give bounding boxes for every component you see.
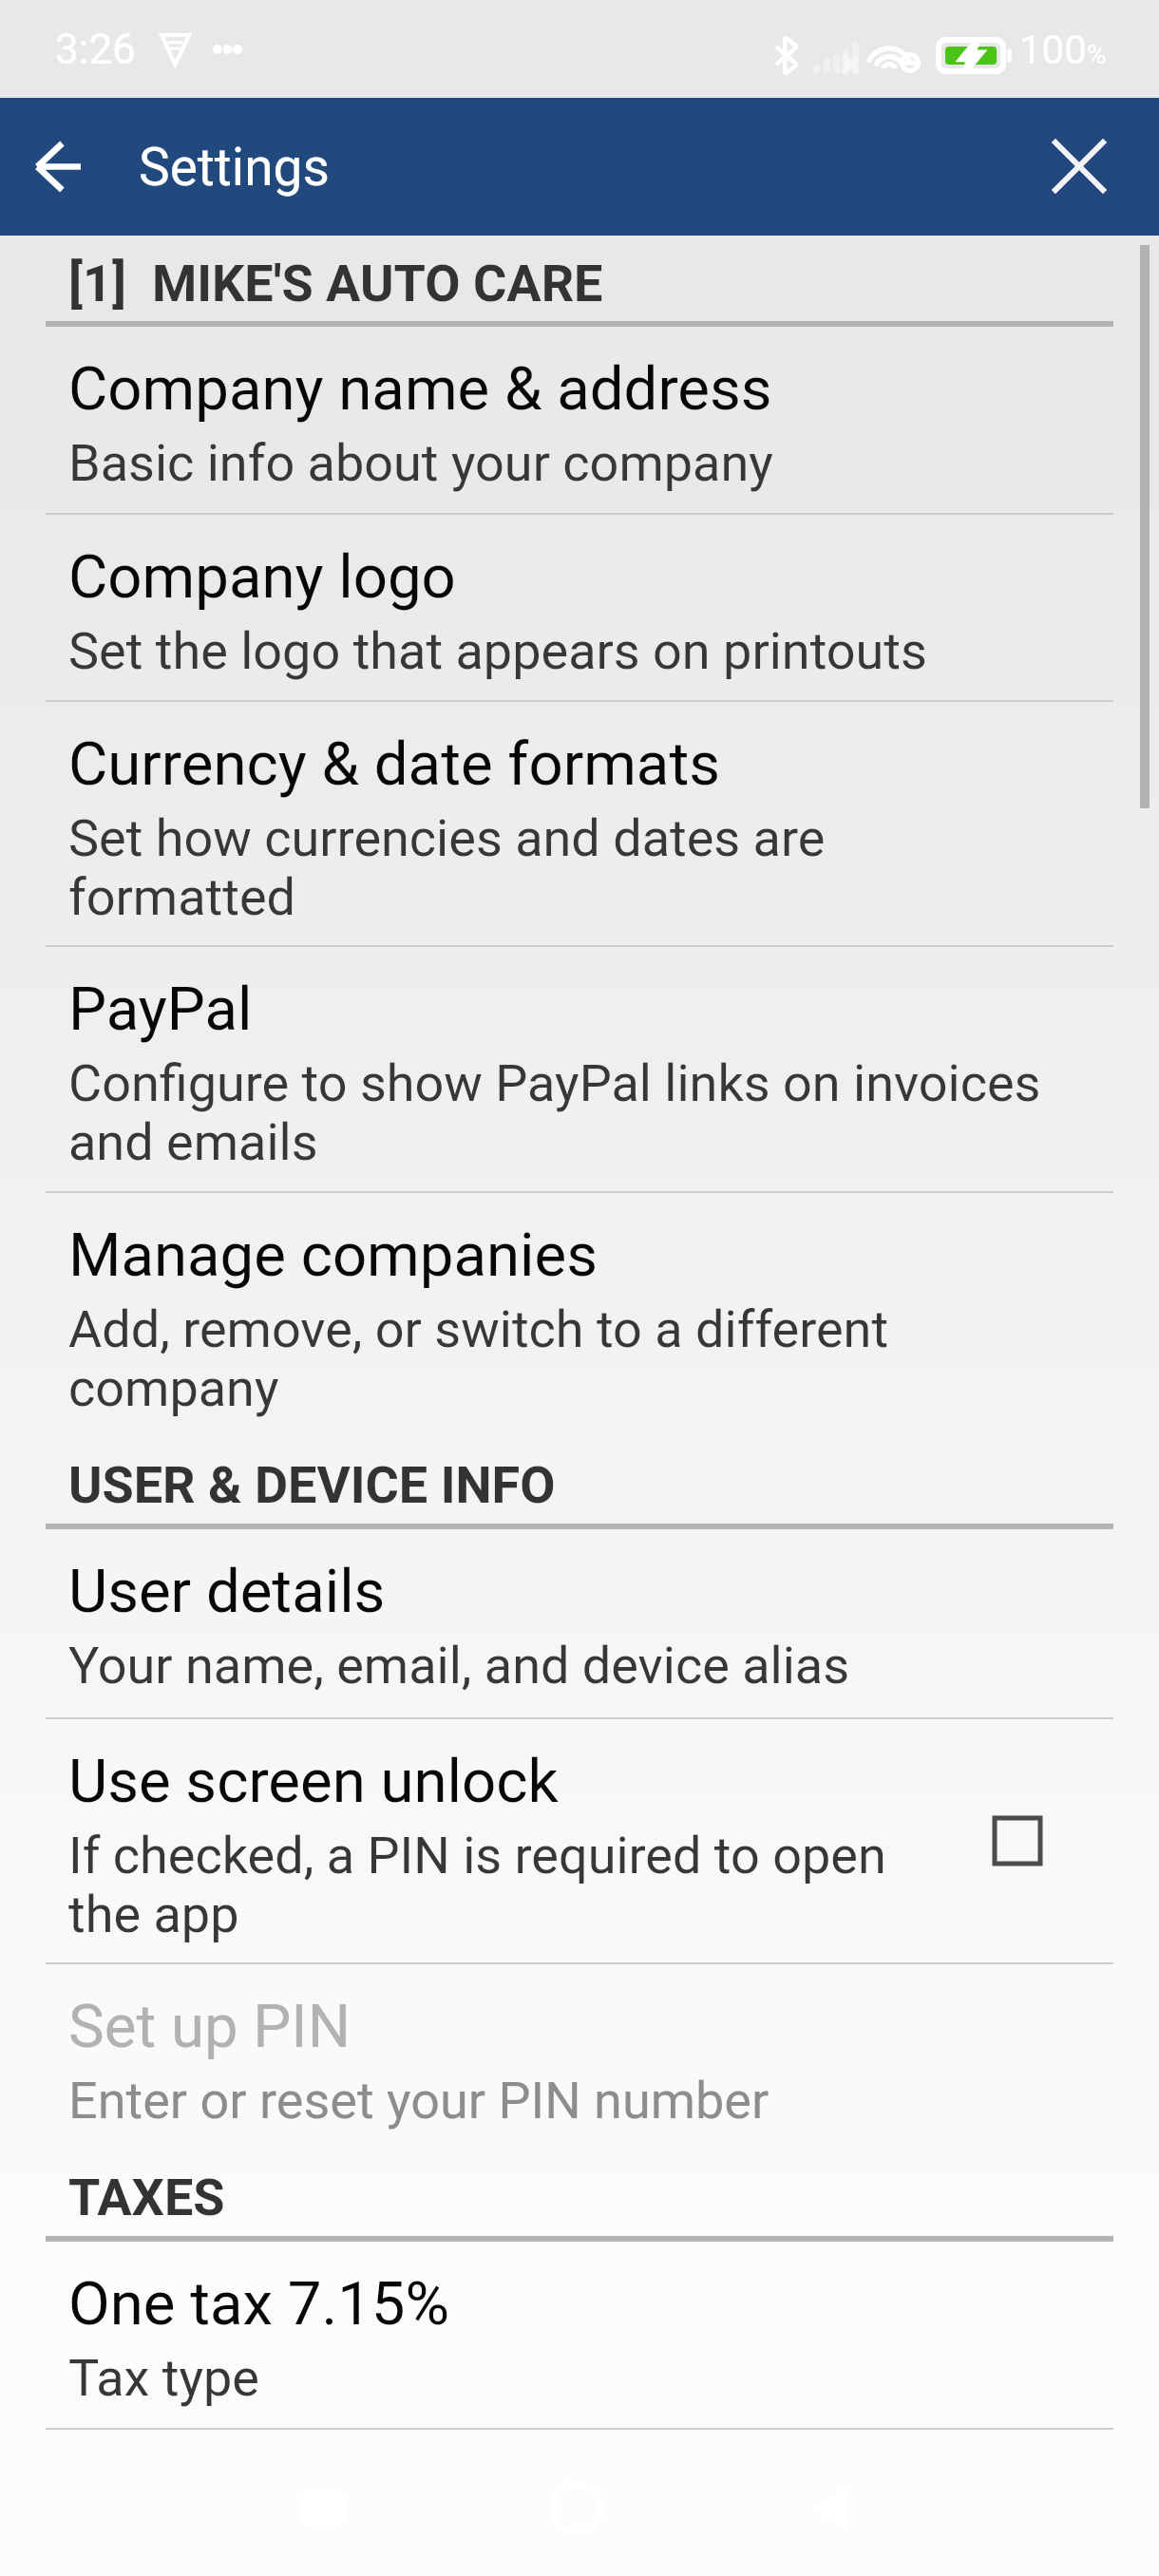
staticText: PayPal [68, 974, 253, 1044]
button[interactable]: Navigate up [6, 115, 108, 218]
staticText: USER & DEVICE INFO [68, 1455, 556, 1515]
button[interactable]: User details [0, 1529, 1159, 1717]
staticText: [1] MIKE'S AUTO CARE [68, 254, 603, 313]
staticText: Set how currencies and dates are formatt… [68, 809, 857, 927]
staticText: Company logo [68, 541, 456, 612]
staticText: User details [68, 1556, 386, 1626]
staticText: Configure to show PayPal links on invoic… [68, 1054, 1052, 1172]
button[interactable]: One tax 7.15% [0, 2242, 1159, 2428]
staticText: % [1087, 39, 1107, 70]
button[interactable]: Use screen unlock checkbox [972, 1795, 1063, 1886]
button[interactable]: Currency & date formats [0, 702, 1159, 945]
button[interactable]: PayPal [0, 947, 1159, 1191]
staticText: 100 [1019, 27, 1087, 73]
staticText: Set the logo that appears on printouts [68, 622, 927, 681]
button[interactable]: Manage companies [0, 1193, 1159, 1431]
staticText: Tax type [68, 2349, 259, 2408]
staticText: 3:26 [55, 25, 136, 74]
staticText: Company name & address [68, 353, 772, 424]
staticText: Settings [139, 137, 330, 198]
staticText: One tax 7.15% [68, 2268, 450, 2339]
button[interactable]: Set up PIN [0, 1964, 1159, 2144]
staticText: Your name, email, and device alias [68, 1637, 850, 1695]
staticText: Currency & date formats [68, 729, 720, 799]
staticText: Manage companies [68, 1220, 598, 1290]
staticText: If checked, a PIN is required to open th… [68, 1827, 895, 1944]
staticText: Enter or reset your PIN number [68, 2072, 769, 2131]
staticText: TAXES [68, 2168, 225, 2227]
button[interactable]: Company logo [0, 515, 1159, 700]
button[interactable]: Close [1028, 115, 1130, 218]
staticText: Basic info about your company [68, 434, 773, 493]
staticText: Use screen unlock [68, 1746, 559, 1816]
button[interactable]: Use screen unlock [0, 1719, 1159, 1962]
staticText: Add, remove, or switch to a different co… [68, 1300, 895, 1418]
staticText: Set up PIN [68, 1991, 351, 2061]
button[interactable]: Company name & address [0, 327, 1159, 513]
